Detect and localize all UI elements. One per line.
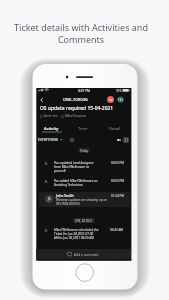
staticText: 02:53 PM: [111, 179, 124, 183]
button[interactable]: Attach: [116, 137, 121, 142]
staticText: Acme Inc.: [44, 114, 59, 118]
staticText: Mikel Simpson: [65, 114, 87, 118]
button[interactable]: Time: [67, 121, 99, 134]
staticText: Windows updates are showing up on SRV-WI…: [56, 198, 107, 206]
button[interactable]: List view: [123, 137, 128, 142]
staticText: You added Mikel Wellsmore as Assisting T…: [54, 179, 104, 187]
staticText: 01:34 PM: [111, 194, 124, 198]
button[interactable]: You added Mikel Wellsmore as Assisting T…: [36, 179, 131, 187]
button[interactable]: Today: [78, 148, 90, 153]
staticText: ORE-100036: [63, 96, 88, 102]
button[interactable]: Mikel Wellsmore scheduled the Ticket for…: [36, 228, 131, 240]
staticText: Time: [78, 126, 88, 132]
staticText: Mikel Wellsmore scheduled the Ticket for…: [54, 228, 104, 240]
staticText: Detail: [109, 126, 121, 132]
button[interactable]: Watchers: [117, 96, 124, 103]
staticText: JUN, 28 2021: [75, 219, 93, 223]
staticText: 03:43 AM: [110, 228, 124, 232]
button[interactable]: Detail: [99, 121, 131, 134]
staticText: 4:31 PM: [78, 89, 90, 93]
staticText: Today: [80, 149, 89, 153]
staticText: You updated Lead Assignee from Mikel Wel…: [54, 161, 104, 173]
staticText: 02:53 PM: [111, 161, 124, 165]
button[interactable]: Add filter: [69, 137, 74, 142]
button[interactable]: Add a comment: [36, 249, 131, 259]
button[interactable]: You updated Lead Assignee from Mikel Wel…: [36, 161, 131, 173]
staticText: Ticket details with Activities and Comme…: [6, 21, 156, 45]
button[interactable]: JS: [39, 192, 130, 207]
button[interactable]: EVERYTHING: [38, 137, 63, 141]
staticText: JS: [48, 197, 51, 201]
staticText: EVERYTHING: [38, 137, 59, 141]
staticText: Add a comment: [74, 252, 99, 256]
staticText: Activity: [44, 126, 59, 132]
staticText: John Smith: [56, 193, 74, 198]
staticText: OS update required 15-04-2021: [40, 105, 114, 112]
staticText: 75%: [116, 89, 122, 93]
button[interactable]: Back: [37, 95, 46, 104]
button[interactable]: Activity: [36, 121, 67, 134]
button[interactable]: JUN, 28 2021: [73, 218, 95, 223]
button[interactable]: Notifications: [107, 96, 114, 103]
